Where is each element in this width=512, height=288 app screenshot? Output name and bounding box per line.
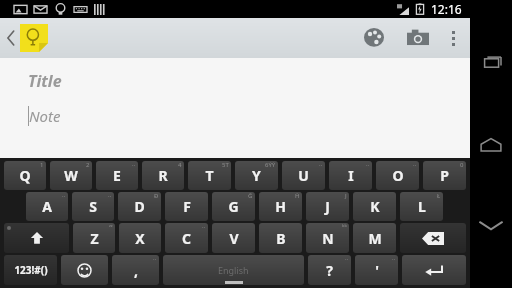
button[interactable]: Back (470, 204, 512, 246)
button[interactable]: Recent apps (470, 42, 512, 84)
button[interactable]: More options (440, 18, 466, 58)
staticText: ·· (413, 161, 417, 169)
button[interactable]: F (165, 192, 208, 221)
staticText: , (134, 261, 138, 280)
staticText: A (42, 197, 52, 216)
staticText: 6ÝÝ (265, 161, 276, 169)
staticText: 12:16 (431, 1, 462, 17)
button[interactable]: Back (4, 18, 18, 58)
staticText: J (325, 197, 330, 216)
button[interactable]: V (212, 223, 255, 253)
button[interactable]: S (72, 192, 114, 221)
staticText: B (276, 229, 286, 248)
staticText: K (370, 197, 380, 216)
staticText: Ğ (248, 192, 253, 200)
staticText: 0 (460, 161, 464, 169)
staticText: ᵇᵇ (342, 223, 347, 231)
staticText: N (322, 229, 334, 248)
button[interactable]: Emoji (61, 255, 108, 285)
button[interactable]: D (118, 192, 161, 221)
button[interactable]: Y (235, 161, 278, 190)
button[interactable]: T (188, 161, 231, 190)
staticText: J (345, 192, 347, 200)
staticText: L (418, 197, 426, 216)
staticText: Z (90, 229, 99, 248)
button[interactable]: A (26, 192, 68, 221)
button[interactable]: 123!#() (4, 255, 57, 285)
staticText: ·· (392, 255, 396, 263)
staticText: E (113, 166, 121, 185)
staticText: English (218, 264, 249, 276)
button[interactable]: C (165, 223, 208, 253)
button[interactable]: Note color (20, 24, 48, 52)
button[interactable]: Home (470, 123, 512, 165)
staticText: Ł (437, 192, 441, 200)
button[interactable]: W (50, 161, 92, 190)
staticText: X (135, 229, 145, 248)
staticText: ·· (153, 255, 157, 263)
button[interactable]: R (142, 161, 184, 190)
staticText: I (348, 166, 354, 185)
button[interactable]: N (306, 223, 349, 253)
staticText: Ĥ (295, 192, 300, 200)
staticText: S (89, 197, 97, 216)
staticText: T (205, 166, 214, 185)
staticText: ? (326, 261, 333, 280)
button[interactable]: P (423, 161, 466, 190)
button[interactable]: B (259, 223, 302, 253)
staticText: W (64, 166, 78, 185)
button[interactable]: O (376, 161, 419, 190)
staticText: Title (28, 70, 62, 92)
button[interactable]: K (353, 192, 396, 221)
staticText: ᶻᶻ (109, 223, 113, 231)
staticText: ·· (345, 255, 349, 263)
staticText: ' (375, 261, 379, 280)
staticText: Q (19, 166, 31, 185)
staticText: 1 (40, 161, 44, 169)
staticText: P (440, 166, 449, 185)
button[interactable]: Z (73, 223, 115, 253)
button[interactable]: J (306, 192, 349, 221)
button[interactable]: E (96, 161, 138, 190)
button[interactable]: Shift (4, 223, 69, 253)
button[interactable]: ' (355, 255, 398, 285)
staticText: R (158, 166, 168, 185)
staticText: D (134, 197, 145, 216)
staticText: 2 (86, 161, 90, 169)
staticText: F (183, 197, 191, 216)
button[interactable]: U (282, 161, 325, 190)
button[interactable]: X (119, 223, 161, 253)
button[interactable]: Backspace (400, 223, 466, 253)
staticText: M (368, 229, 382, 248)
staticText: Ð (154, 192, 159, 200)
staticText: ·· (319, 161, 323, 169)
staticText: ·· (202, 223, 206, 231)
staticText: G (228, 197, 239, 216)
button[interactable]: Enter (402, 255, 466, 285)
button[interactable]: L (400, 192, 443, 221)
button[interactable]: G (212, 192, 255, 221)
staticText: 123!#() (14, 263, 48, 277)
staticText: ·· (366, 161, 370, 169)
button[interactable]: , (112, 255, 159, 285)
staticText: O (392, 166, 404, 185)
button[interactable]: Space (163, 255, 304, 285)
staticText: 4 (178, 161, 182, 169)
staticText: Y (252, 166, 261, 185)
button[interactable]: H (259, 192, 302, 221)
button[interactable]: Q (4, 161, 46, 190)
button[interactable]: Color palette (352, 18, 396, 58)
staticText: U (298, 166, 309, 185)
button[interactable]: I (329, 161, 372, 190)
staticText: C (182, 229, 191, 248)
staticText: Note (29, 106, 61, 126)
button[interactable]: ? (308, 255, 351, 285)
staticText: 5T (222, 161, 229, 169)
button[interactable]: M (353, 223, 396, 253)
button[interactable]: Camera (396, 18, 440, 58)
staticText: V (229, 229, 239, 248)
staticText: ·· (132, 161, 136, 169)
staticText: H (275, 197, 286, 216)
staticText: ·· (62, 192, 66, 200)
staticText: ·· (108, 192, 112, 200)
